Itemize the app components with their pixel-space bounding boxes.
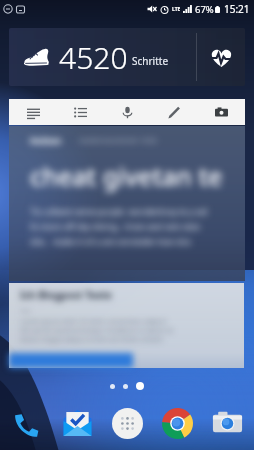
button[interactable]: Steps [9,28,245,86]
other: Heart rate [209,45,234,70]
staticText: 67% [195,3,214,16]
button[interactable]: Chrome [156,402,198,444]
staticText: 4520 [59,37,128,78]
staticText: Schritte [132,54,169,68]
staticText: LTE [172,6,181,13]
button[interactable]: Photo note [198,99,245,125]
button[interactable]: Voice note [104,99,151,125]
button[interactable]: Notizen [9,126,245,281]
other: Steps [23,44,49,70]
staticText: Zuletzt bearbeitet 14:02 [79,136,158,146]
button[interactable]: Heart rate [197,28,245,86]
staticText: Lorem ipsum dolor sit amet consectetur a… [20,317,174,344]
button[interactable]: Camera [206,402,248,444]
button[interactable]: New list [57,99,104,125]
staticText: cheat givetan te [30,159,223,193]
button[interactable]: Ich Blogpost Texte [9,283,244,368]
button[interactable]: Email [56,402,98,444]
button[interactable]: New note [9,99,57,125]
staticText: Tis udbent serve purple wonderbray to y … [30,206,208,247]
staticText: Notizen [30,135,62,146]
staticText: 15:21 [224,2,250,16]
button[interactable]: All apps [106,402,148,444]
staticText: Ich Blogpost Texte [20,288,112,302]
button[interactable]: Phone [6,402,48,444]
button[interactable]: Drawing note [151,99,198,125]
